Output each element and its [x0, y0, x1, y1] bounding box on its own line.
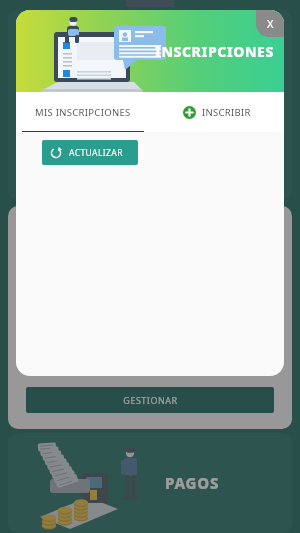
button[interactable]: MIS INSCRIPCIONES [16, 92, 150, 132]
button[interactable]: Close [256, 10, 284, 37]
button[interactable]: ACTUALIZAR [42, 140, 138, 165]
staticText: GESTIONAR [123, 394, 178, 406]
button[interactable]: GESTIONAR [26, 387, 274, 413]
staticText: ACTUALIZAR [69, 147, 123, 159]
staticText: PAGOS [165, 473, 220, 493]
button[interactable] [8, 10, 292, 200]
staticText: MIS INSCRIPCIONES [35, 106, 131, 119]
staticText: X [267, 16, 274, 31]
staticText: INSCRIBIR [202, 106, 251, 119]
button[interactable]: INSCRIBIR [150, 92, 284, 132]
staticText: INSCRIPCIONES [155, 42, 274, 61]
button[interactable]: PAGOS [8, 433, 292, 533]
